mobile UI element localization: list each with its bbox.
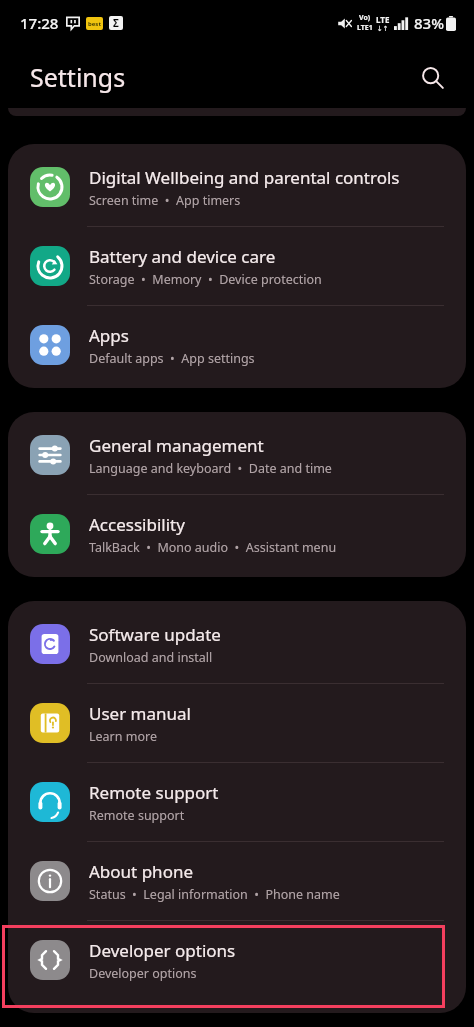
staticText: Default apps • App settings bbox=[89, 350, 255, 367]
staticText: Learn more bbox=[89, 728, 157, 745]
staticText: best bbox=[88, 20, 101, 28]
staticText: Σ bbox=[113, 16, 119, 30]
staticText: LTE1 bbox=[357, 23, 373, 33]
staticText: User manual bbox=[89, 702, 191, 725]
staticText: Battery and device care bbox=[89, 245, 276, 268]
staticText: Remote support bbox=[89, 781, 219, 804]
staticText: Vo) bbox=[359, 13, 371, 23]
button[interactable]: Digital Wellbeing and parental controls bbox=[8, 148, 466, 226]
staticText: Download and install bbox=[89, 649, 213, 666]
staticText: Settings bbox=[30, 60, 126, 94]
staticText: Accessibility bbox=[89, 513, 185, 536]
staticText: Software update bbox=[89, 623, 221, 646]
staticText: Screen time • App timers bbox=[89, 192, 241, 209]
button[interactable]: Software update bbox=[8, 605, 466, 683]
staticText: Digital Wellbeing and parental controls bbox=[89, 166, 400, 189]
staticText: Status • Legal information • Phone name bbox=[89, 886, 340, 903]
button[interactable]: Battery and device care bbox=[8, 227, 466, 305]
button[interactable]: Developer options bbox=[8, 921, 466, 999]
button[interactable]: Remote support bbox=[8, 763, 466, 841]
staticText: Storage • Memory • Device protection bbox=[89, 271, 322, 288]
staticText: Apps bbox=[89, 324, 129, 347]
staticText: TalkBack • Mono audio • Assistant menu bbox=[89, 539, 337, 556]
button[interactable]: User manual bbox=[8, 684, 466, 762]
staticText: Remote support bbox=[89, 807, 185, 824]
staticText: ↓↑ bbox=[377, 25, 389, 33]
button[interactable]: Apps bbox=[8, 306, 466, 384]
staticText: Developer options bbox=[89, 965, 197, 982]
staticText: LTE bbox=[376, 14, 390, 25]
staticText: About phone bbox=[89, 860, 194, 883]
staticText: Developer options bbox=[89, 939, 236, 962]
button[interactable]: Search bbox=[412, 57, 452, 97]
button[interactable]: About phone bbox=[8, 842, 466, 920]
staticText: 17:28 bbox=[20, 13, 59, 33]
button[interactable]: Accessibility bbox=[8, 495, 466, 573]
staticText: General management bbox=[89, 434, 264, 457]
button[interactable]: General management bbox=[8, 416, 466, 494]
staticText: Language and keyboard • Date and time bbox=[89, 460, 332, 477]
staticText: 83% bbox=[414, 13, 444, 33]
